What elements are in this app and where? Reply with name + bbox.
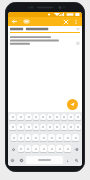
button[interactable]: [25, 114, 32, 121]
button[interactable]: [17, 124, 24, 131]
button[interactable]: [75, 124, 81, 131]
button[interactable]: [75, 114, 81, 121]
button[interactable]: [9, 114, 16, 121]
button[interactable]: [8, 26, 82, 32]
button[interactable]: [25, 145, 31, 153]
button[interactable]: [68, 124, 74, 131]
button[interactable]: [40, 134, 47, 142]
button[interactable]: Space: [26, 156, 63, 164]
button[interactable]: [40, 114, 46, 121]
button[interactable]: Send: [67, 99, 78, 110]
button[interactable]: [64, 134, 71, 142]
button[interactable]: Backspace: [72, 145, 81, 153]
button[interactable]: [47, 124, 53, 131]
button[interactable]: [68, 114, 74, 121]
button[interactable]: [25, 134, 31, 142]
button[interactable]: [33, 124, 39, 131]
button[interactable]: [33, 114, 39, 121]
button[interactable]: Shift: [9, 145, 17, 153]
button[interactable]: [64, 145, 71, 153]
button[interactable]: More options: [71, 17, 80, 26]
button[interactable]: Settings: [17, 156, 25, 164]
button[interactable]: [17, 114, 24, 121]
button[interactable]: [48, 145, 55, 153]
button[interactable]: Search: [72, 156, 81, 164]
button[interactable]: [11, 134, 17, 142]
button[interactable]: [54, 124, 60, 131]
button[interactable]: [61, 114, 67, 121]
button[interactable]: [9, 124, 16, 131]
button[interactable]: [54, 114, 60, 121]
button[interactable]: [47, 114, 53, 121]
button[interactable]: [40, 145, 47, 153]
button[interactable]: [48, 134, 55, 142]
button[interactable]: [56, 145, 63, 153]
button[interactable]: Attach: [22, 17, 31, 26]
button[interactable]: [72, 134, 79, 142]
button[interactable]: Emoji: [9, 156, 16, 164]
button[interactable]: [25, 124, 32, 131]
button[interactable]: [32, 134, 39, 142]
button[interactable]: Period: [64, 156, 71, 164]
button[interactable]: [40, 124, 46, 131]
button[interactable]: [61, 124, 67, 131]
button[interactable]: [18, 145, 24, 153]
button[interactable]: Close: [61, 17, 70, 26]
button[interactable]: [56, 134, 63, 142]
button[interactable]: [32, 145, 39, 153]
button[interactable]: [18, 134, 24, 142]
button[interactable]: Back: [10, 17, 19, 26]
